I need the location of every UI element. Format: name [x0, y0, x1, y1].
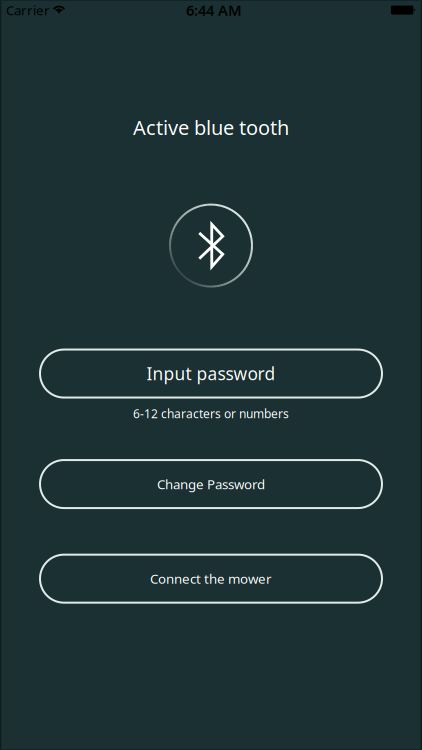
staticText: Active blue tooth	[133, 114, 289, 141]
button[interactable]: Change Password	[40, 460, 382, 508]
staticText: Carrier	[6, 1, 50, 19]
staticText: Connect the mower	[150, 570, 272, 587]
staticText: 6:44 AM	[186, 0, 242, 20]
button[interactable]: Connect the mower	[40, 555, 382, 603]
staticText: 6-12 characters or numbers	[133, 406, 289, 421]
staticText: Change Password	[157, 475, 265, 493]
staticText: Input password	[146, 362, 275, 385]
button[interactable]: Input password	[40, 350, 382, 398]
